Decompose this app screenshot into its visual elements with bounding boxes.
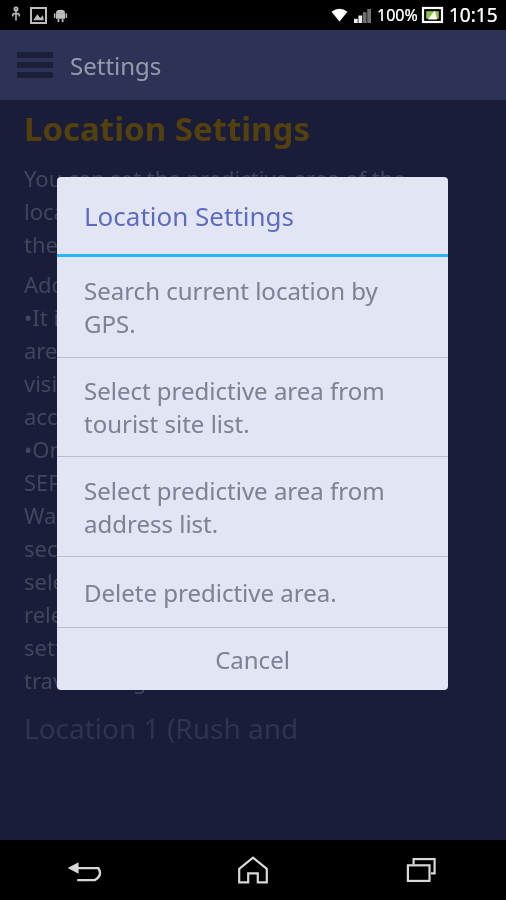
staticText: Additional notes •It is necessary to reg… <box>24 269 442 695</box>
staticText: 10:15 <box>449 2 498 28</box>
button[interactable]: Back <box>0 840 168 900</box>
staticText: You can set the predictive area of the l… <box>24 163 482 259</box>
staticText: Settings <box>70 49 162 82</box>
staticText: Cancel <box>215 643 290 676</box>
button[interactable]: Select predictive area from tourist site… <box>57 358 448 456</box>
button[interactable]: Delete predictive area. <box>57 557 448 627</box>
button[interactable]: Recent apps <box>337 840 506 900</box>
button[interactable]: Open navigation menu <box>0 30 70 100</box>
button[interactable]: Select predictive area from address list… <box>57 457 448 556</box>
staticText: Location Settings <box>24 106 310 151</box>
staticText: Search current location by GPS. <box>84 274 378 340</box>
staticText: Select predictive area from address list… <box>84 474 385 540</box>
button[interactable]: Search current location by GPS. <box>57 257 448 357</box>
staticText: Location Settings <box>84 198 295 233</box>
staticText: Select predictive area from tourist site… <box>84 374 385 440</box>
staticText: Location 1 (Rush and <box>24 709 299 747</box>
staticText: Delete predictive area. <box>84 576 337 609</box>
button[interactable]: Home <box>168 840 337 900</box>
button[interactable]: Cancel <box>57 628 448 690</box>
staticText: 100% <box>377 4 418 26</box>
